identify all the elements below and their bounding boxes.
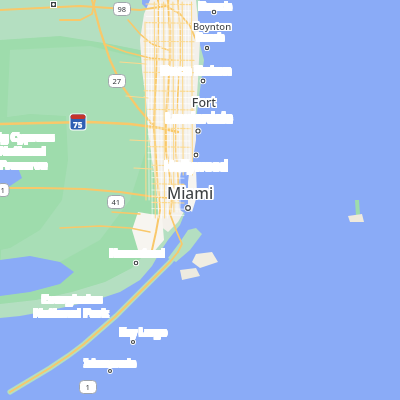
button[interactable]: Map of South Florida bbox=[0, 0, 400, 400]
